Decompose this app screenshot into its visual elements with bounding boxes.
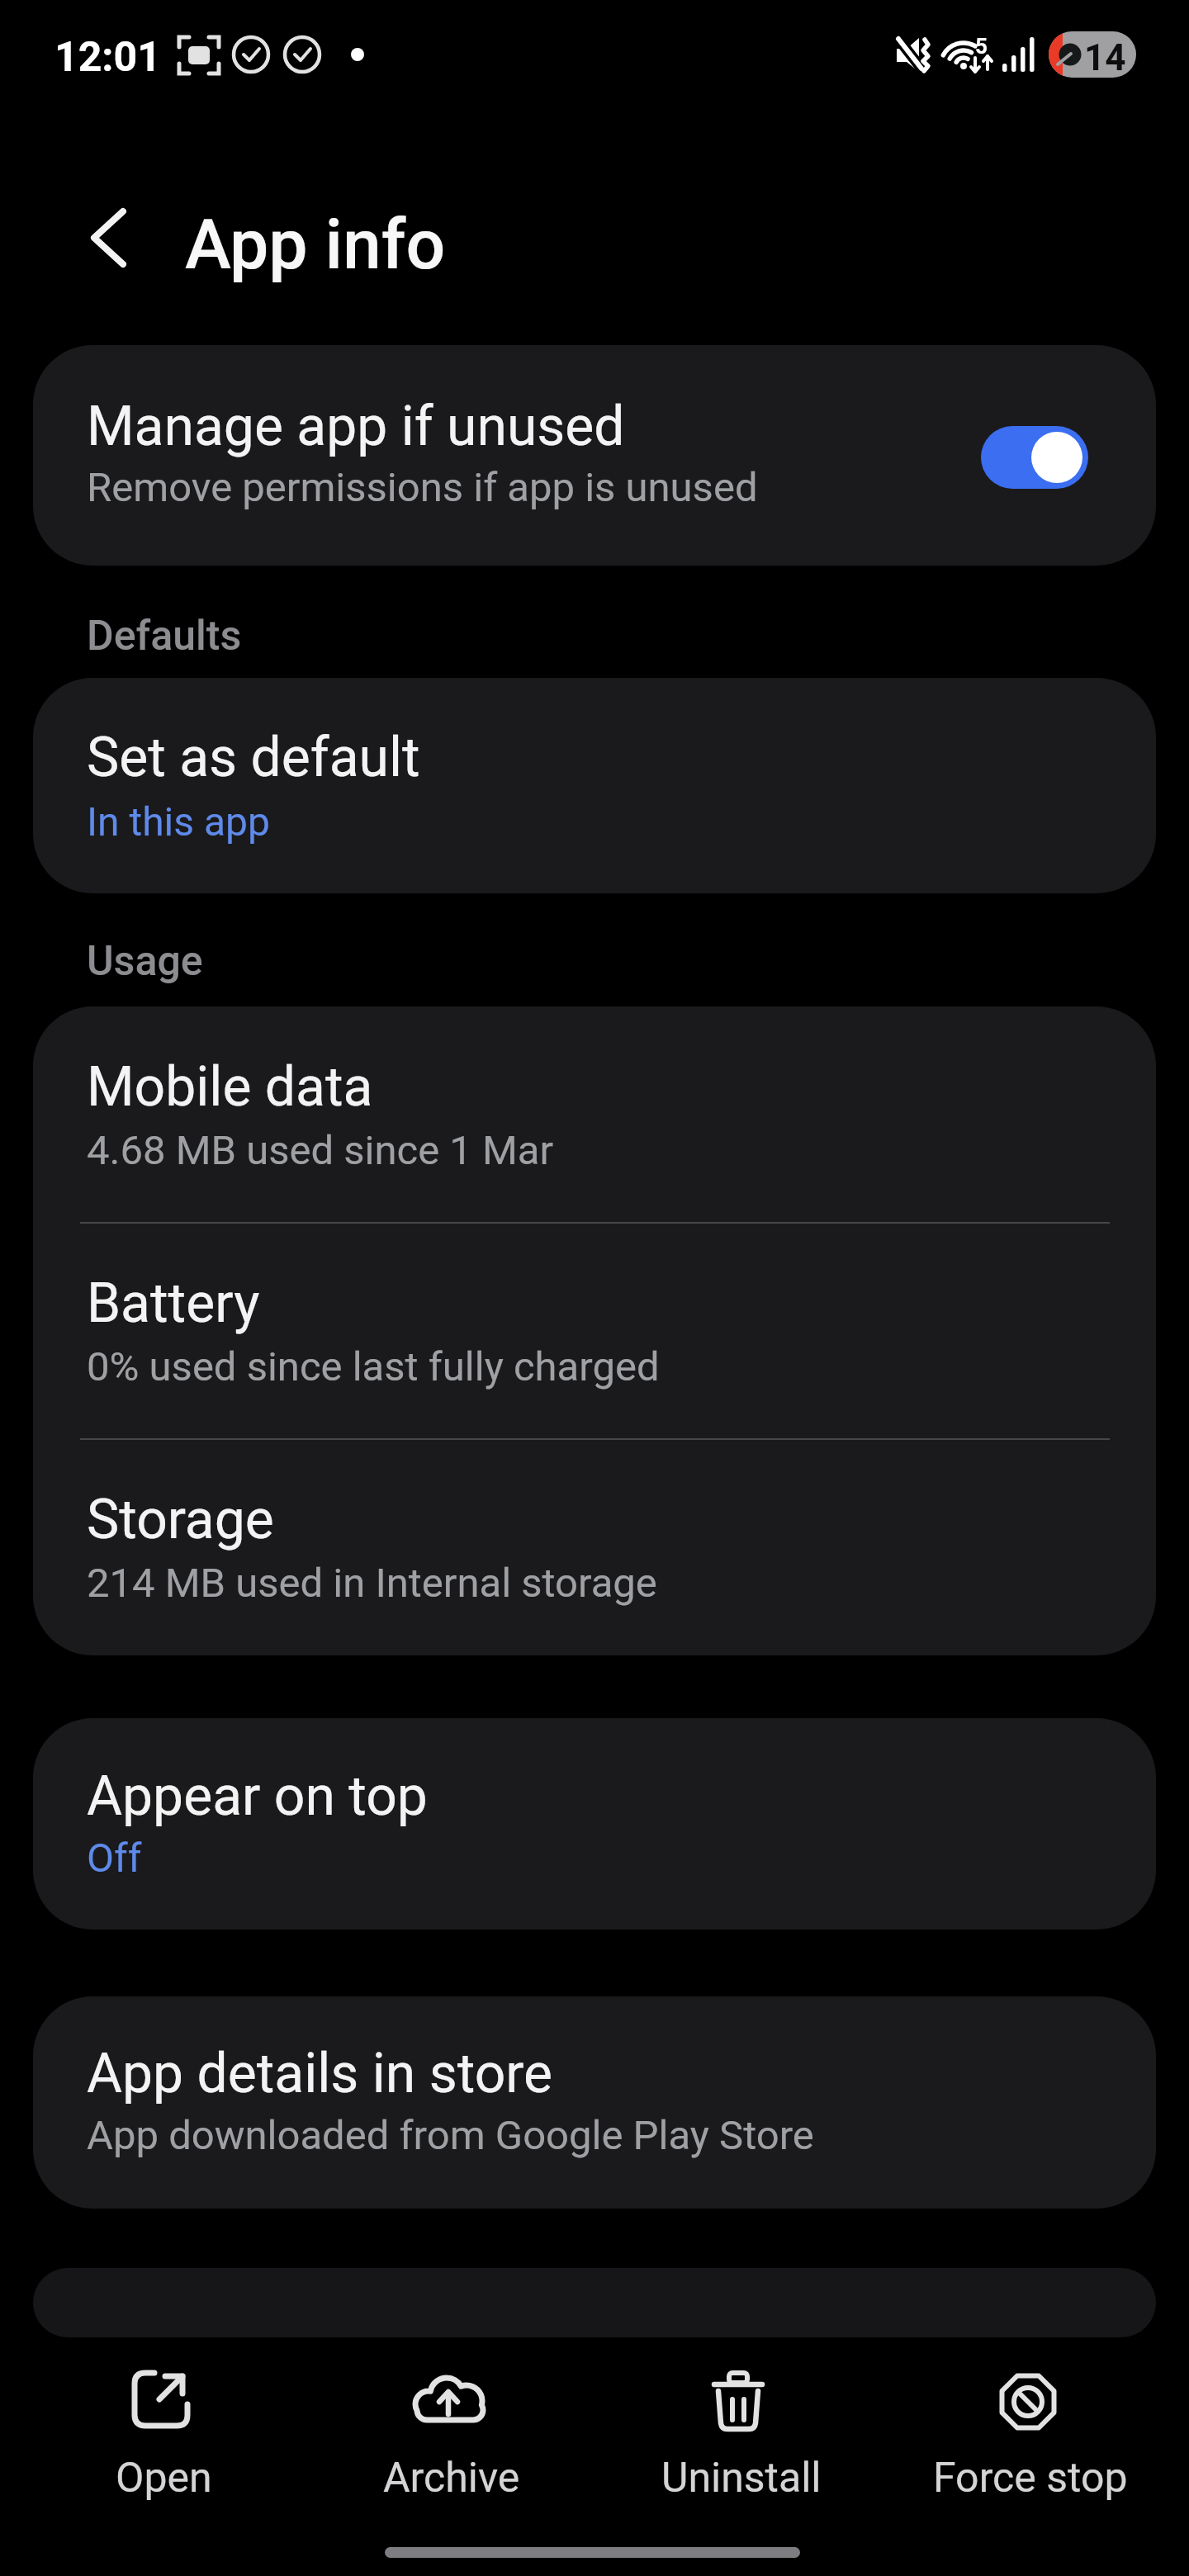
staticText: Open [116,2454,212,2503]
button[interactable]: Open [37,2361,285,2502]
staticText: 4.68 MB used since 1 Mar [87,1127,554,1174]
button[interactable]: Manage app if unused [33,345,1156,566]
staticText: Usage [87,937,203,986]
staticText: Appear on top [87,1764,428,1828]
button[interactable]: App details in store [33,1996,1156,2209]
button[interactable] [66,190,157,289]
staticText: Battery [87,1271,260,1335]
staticText: 5 [975,34,988,59]
staticText: Mobile data [87,1055,373,1119]
staticText: 0% used since last fully charged [87,1343,660,1390]
staticText: Defaults [87,612,242,661]
staticText: Manage app if unused [87,395,625,458]
staticText: Archive [383,2454,520,2503]
staticText: 12:01 [54,33,161,82]
button[interactable]: Archive [326,2361,574,2502]
staticText: Storage [87,1488,274,1551]
staticText: Force stop [933,2454,1128,2503]
staticText: App details in store [87,2042,553,2105]
button[interactable]: Mobile data [33,1006,1156,1223]
staticText: App info [185,204,446,285]
button[interactable]: Set as default [33,678,1156,893]
button[interactable]: Appear on top [33,1718,1156,1930]
staticText: Remove permissions if app is unused [87,464,758,511]
button[interactable] [981,426,1088,489]
staticText: App downloaded from Google Play Store [87,2112,814,2159]
staticText: In this app [87,798,270,845]
staticText: Set as default [87,726,420,789]
button[interactable]: Storage [33,1439,1156,1655]
button[interactable]: Mobile data [33,1006,1156,1655]
staticText: 14 [1084,36,1126,78]
button[interactable]: Battery [33,1223,1156,1439]
button[interactable]: Uninstall [614,2361,862,2502]
button[interactable]: Force stop [904,2361,1152,2502]
staticText: 214 MB used in Internal storage [87,1560,657,1607]
staticText: Uninstall [661,2454,822,2503]
staticText: Off [87,1835,142,1881]
